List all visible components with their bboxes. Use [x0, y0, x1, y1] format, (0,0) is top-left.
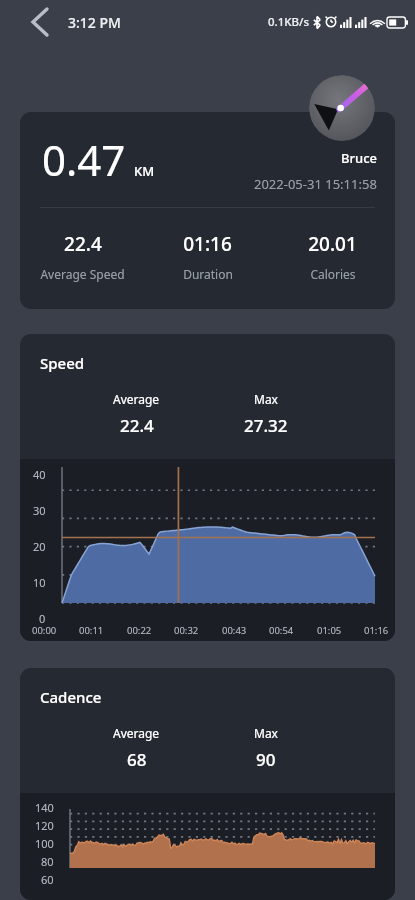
staticText: 0 [39, 611, 46, 626]
staticText: 20.01 [308, 231, 357, 257]
staticText: Cadence [40, 687, 102, 707]
staticText: 00:11 [79, 624, 104, 637]
button[interactable]: 20.01 [270, 231, 395, 282]
button[interactable]: Speed [20, 334, 395, 641]
staticText: 3:12 PM [68, 13, 121, 32]
staticText: 80 [41, 854, 54, 869]
staticText: 27.32 [244, 414, 288, 437]
button[interactable]: 01:16 [145, 231, 270, 282]
staticText: 0.1KB/s [268, 14, 310, 30]
staticText: 90 [256, 748, 276, 771]
staticText: 2022-05-31 15:11:58 [254, 175, 377, 193]
staticText: Max [254, 391, 278, 407]
staticText: 100 [35, 836, 54, 851]
staticText: 00:22 [127, 624, 152, 637]
staticText: 00:32 [174, 624, 199, 637]
staticText: 10 [33, 575, 46, 590]
staticText: 20 [33, 539, 46, 554]
button[interactable]: 22.4 [20, 231, 145, 282]
staticText: 60 [41, 872, 54, 887]
staticText: 40 [33, 467, 46, 482]
staticText: Average [113, 391, 160, 407]
staticText: 00:54 [269, 624, 294, 637]
staticText: 140 [35, 800, 54, 815]
staticText: 0.47 [42, 131, 126, 188]
button[interactable]: Back [18, 2, 58, 42]
staticText: 120 [35, 818, 54, 833]
staticText: 01:05 [317, 624, 342, 637]
staticText: 22.4 [64, 231, 102, 257]
button[interactable]: Profile avatar [309, 75, 375, 141]
staticText: 00:43 [222, 624, 247, 637]
staticText: 30 [33, 503, 46, 518]
staticText: 68 [127, 748, 147, 771]
staticText: Bruce [341, 149, 377, 167]
staticText: 01:16 [183, 231, 232, 257]
staticText: Calories [310, 266, 356, 282]
staticText: Speed [40, 353, 85, 373]
button[interactable]: Cadence [20, 668, 395, 900]
staticText: Max [254, 725, 278, 741]
staticText: 01:16 [364, 624, 389, 637]
staticText: KM [134, 162, 155, 180]
staticText: Average Speed [40, 266, 125, 282]
staticText: Average [113, 725, 160, 741]
staticText: 00:00 [32, 624, 57, 637]
staticText: Duration [183, 266, 233, 282]
staticText: 22.4 [120, 414, 154, 437]
button[interactable]: 0.47 [20, 112, 395, 309]
